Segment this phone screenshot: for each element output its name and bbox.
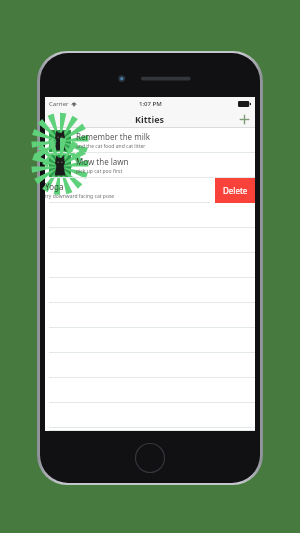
staticText: Kitties xyxy=(135,113,165,125)
button[interactable] xyxy=(45,353,255,378)
button[interactable] xyxy=(45,303,255,328)
staticText: pick up cat poo first xyxy=(76,168,123,175)
button[interactable] xyxy=(45,428,255,431)
button[interactable]: Mow the lawn xyxy=(45,153,255,178)
staticText: and the cat food and cat litter xyxy=(76,143,146,150)
button[interactable] xyxy=(45,278,255,303)
button[interactable]: Remember the milk xyxy=(45,128,255,153)
staticText: Yoga xyxy=(45,181,64,192)
staticText: 1:07 PM xyxy=(139,100,162,108)
button[interactable]: Add xyxy=(236,111,252,127)
button[interactable]: Yoga xyxy=(45,178,215,203)
button[interactable]: Delete xyxy=(215,178,255,203)
button[interactable] xyxy=(45,328,255,353)
button[interactable] xyxy=(45,203,255,228)
button[interactable]: Home xyxy=(135,443,165,473)
button[interactable] xyxy=(45,378,255,403)
staticText: Remember the milk xyxy=(76,131,151,142)
staticText: Delete xyxy=(223,185,248,196)
staticText: try downward facing cat pose xyxy=(45,193,115,200)
button[interactable] xyxy=(45,403,255,428)
button[interactable] xyxy=(45,228,255,253)
button[interactable] xyxy=(45,253,255,278)
staticText: Mow the lawn xyxy=(76,156,129,167)
staticText: Carrier xyxy=(49,100,69,108)
